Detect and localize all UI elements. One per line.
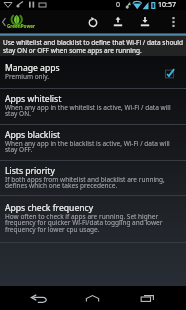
button[interactable]: Apps check frequency: [0, 196, 186, 242]
button[interactable]: More options: [160, 10, 186, 33]
staticText: Apps blacklist: [5, 129, 61, 141]
button[interactable]: Reset: [79, 10, 106, 33]
button[interactable]: Back: [11, 286, 66, 310]
button[interactable]: Lists priority: [0, 161, 186, 195]
button[interactable]: Import: [130, 10, 160, 33]
staticText: Apps check frequency: [5, 202, 94, 214]
staticText: How often to check if apps are running. …: [5, 212, 174, 234]
button[interactable]: Manage apps: [0, 56, 186, 88]
staticText: If both apps from whitelist and blacklis…: [5, 175, 174, 190]
staticText: Apps whitelist: [5, 93, 62, 105]
staticText: 0: [116, 0, 121, 10]
staticText: When any app in the whitelist is active,…: [5, 103, 174, 118]
staticText: Manage apps: [5, 62, 60, 74]
staticText: Use whitelist and blacklist to define th…: [3, 38, 184, 55]
button[interactable]: Export: [106, 10, 130, 33]
button[interactable]: GreenPower: [0, 10, 46, 33]
staticText: When any app in the blacklist is active,…: [5, 139, 174, 154]
staticText: Premium only.: [5, 72, 50, 81]
button[interactable]: Apps whitelist: [0, 89, 186, 124]
button[interactable]: Home: [65, 286, 120, 310]
button[interactable]: Apps blacklist: [0, 125, 186, 160]
staticText: GreenPower: [7, 23, 36, 29]
button[interactable]: Recents: [120, 286, 175, 310]
staticText: Lists priority: [5, 165, 55, 177]
staticText: 10:57: [158, 0, 176, 10]
